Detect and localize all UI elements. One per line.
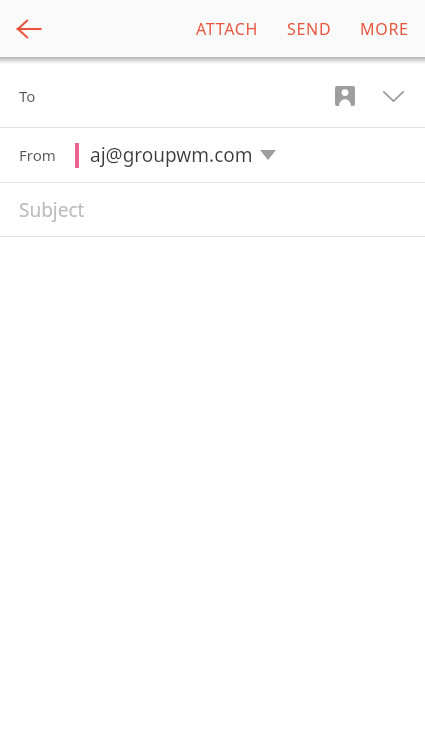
button[interactable]: From xyxy=(0,128,425,182)
staticText: From xyxy=(19,145,56,165)
button[interactable]: To xyxy=(0,64,425,127)
button[interactable]: SEND xyxy=(273,4,346,54)
staticText: MORE xyxy=(360,18,409,40)
button[interactable]: ATTACH xyxy=(182,4,273,54)
button[interactable]: Pick contact xyxy=(325,76,365,116)
button[interactable]: Back xyxy=(5,5,53,53)
button[interactable]: Show Cc and Bcc xyxy=(373,76,413,116)
button[interactable]: Subject xyxy=(0,183,425,236)
staticText: ATTACH xyxy=(196,18,259,40)
staticText: To xyxy=(19,86,36,106)
staticText: Subject xyxy=(19,197,85,223)
staticText: SEND xyxy=(287,18,332,40)
staticText: aj@groupwm.com xyxy=(90,142,253,168)
button[interactable]: MORE xyxy=(346,4,423,54)
